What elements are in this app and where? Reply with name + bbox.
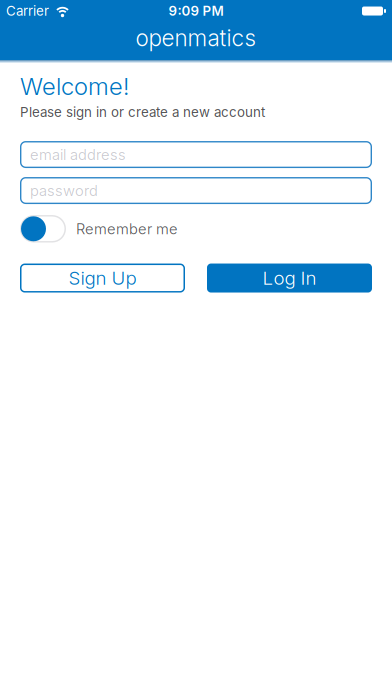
button[interactable]: Remember me — [20, 215, 66, 242]
staticText: Carrier — [6, 3, 49, 19]
staticText: email address — [30, 146, 126, 163]
staticText: Sign Up — [68, 267, 136, 289]
staticText: password — [30, 182, 98, 199]
staticText: Please sign in or create a new account — [20, 104, 265, 120]
staticText: Log In — [262, 267, 316, 289]
button[interactable]: password — [20, 177, 372, 204]
button[interactable]: Log In — [207, 263, 372, 292]
button[interactable]: Sign Up — [20, 263, 185, 292]
staticText: Welcome! — [20, 72, 129, 100]
staticText: openmatics — [135, 25, 256, 51]
staticText: Remember me — [76, 220, 178, 237]
staticText: 9:09 PM — [168, 3, 223, 19]
button[interactable]: email address — [20, 141, 372, 168]
